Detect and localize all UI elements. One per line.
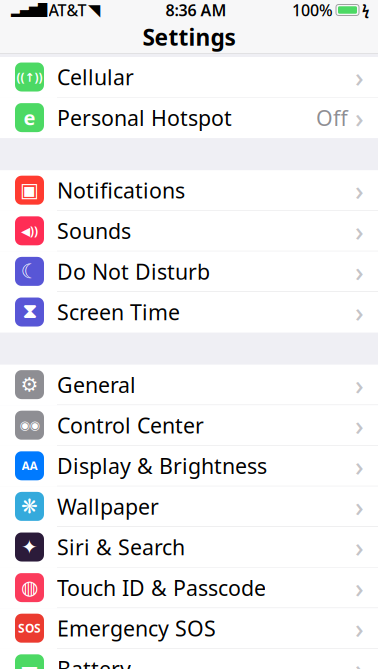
staticText: › <box>355 294 364 330</box>
staticText: General <box>57 370 136 399</box>
staticText: › <box>355 367 364 402</box>
staticText: ϟ <box>362 1 369 19</box>
staticText: ▣ <box>20 179 39 202</box>
staticText: Control Center <box>57 411 204 439</box>
staticText: Cellular <box>57 63 134 91</box>
staticText: › <box>355 489 364 524</box>
button[interactable]: ⧗ <box>0 292 378 333</box>
staticText: Off <box>316 103 348 132</box>
staticText: Personal Hotspot <box>57 103 232 132</box>
button[interactable]: ❋ <box>0 486 378 527</box>
staticText: › <box>355 610 364 646</box>
staticText: › <box>355 172 364 208</box>
staticText: › <box>355 651 364 669</box>
staticText: 100% <box>292 0 333 21</box>
staticText: › <box>355 59 364 95</box>
staticText: ◀)) <box>21 223 38 239</box>
staticText: Touch ID & Passcode <box>57 573 266 602</box>
button[interactable]: AA <box>0 446 378 486</box>
button[interactable]: ◀)) <box>0 211 378 251</box>
button[interactable]: ✦ <box>0 527 378 568</box>
staticText: › <box>355 448 364 483</box>
staticText: › <box>355 529 364 565</box>
staticText: Settings <box>142 22 235 52</box>
staticText: ◥ <box>88 1 100 19</box>
button[interactable]: ☾ <box>0 251 378 292</box>
staticText: 8:36 AM <box>165 0 226 21</box>
staticText: Battery <box>57 655 131 669</box>
staticText: ❋ <box>21 495 38 518</box>
staticText: › <box>355 570 364 605</box>
staticText: Wallpaper <box>57 492 159 520</box>
staticText: Screen Time <box>57 298 180 326</box>
button[interactable]: ⚙ <box>0 365 378 405</box>
staticText: ▂▄▆█ <box>11 3 47 17</box>
staticText: › <box>355 100 364 135</box>
staticText: Display & Brightness <box>57 452 267 480</box>
staticText: › <box>355 213 364 248</box>
staticText: ⚙ <box>20 373 38 396</box>
button[interactable]: ◉◉ <box>0 405 378 446</box>
button[interactable]: ▣ <box>0 170 378 211</box>
staticText: ((↑)) <box>16 69 42 85</box>
staticText: › <box>355 407 364 443</box>
staticText: Do Not Disturb <box>57 257 210 285</box>
staticText: SOS <box>18 620 41 636</box>
button[interactable]: e <box>0 98 378 138</box>
staticText: Siri & Search <box>57 533 185 561</box>
staticText: ▬ <box>20 657 39 669</box>
staticText: AT&T <box>48 0 86 21</box>
button[interactable]: SOS <box>0 608 378 649</box>
staticText: Sounds <box>57 217 131 245</box>
staticText: Notifications <box>57 176 185 204</box>
staticText: ⧗ <box>22 302 36 322</box>
staticText: AA <box>21 458 37 474</box>
staticText: › <box>355 254 364 289</box>
button[interactable]: ◍ <box>0 568 378 608</box>
button[interactable]: ▬ <box>0 649 378 669</box>
staticText: ◉◉ <box>19 418 39 432</box>
staticText: Emergency SOS <box>57 614 216 642</box>
staticText: ✦ <box>21 536 38 558</box>
staticText: e <box>23 104 35 131</box>
button[interactable]: ((↑)) <box>0 57 378 98</box>
staticText: ◍ <box>21 576 38 599</box>
staticText: ☾ <box>20 260 38 283</box>
